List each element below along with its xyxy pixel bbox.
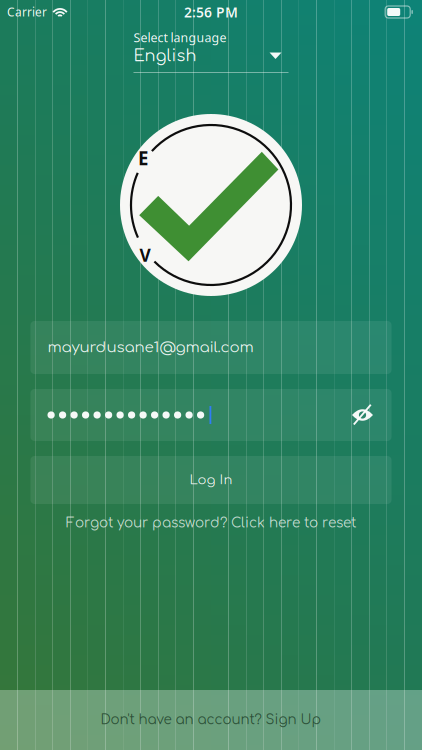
button[interactable]: Show password bbox=[341, 394, 383, 436]
button[interactable]: Don't have an account? Sign Up bbox=[0, 690, 422, 750]
staticText: 2:56 PM bbox=[184, 3, 238, 21]
staticText: E bbox=[138, 145, 148, 171]
staticText: Select language bbox=[133, 29, 226, 46]
staticText: Don't have an account? Sign Up bbox=[100, 712, 321, 727]
button[interactable]: Log In bbox=[30, 456, 391, 504]
button[interactable]: Select language bbox=[133, 30, 288, 73]
staticText: V bbox=[139, 243, 150, 267]
staticText: Log In bbox=[189, 473, 232, 487]
button[interactable]: Forgot your password? Click here to rese… bbox=[30, 507, 391, 539]
staticText: Carrier bbox=[7, 4, 47, 20]
staticText: English bbox=[133, 47, 196, 65]
staticText: Forgot your password? Click here to rese… bbox=[66, 515, 356, 531]
staticText: mayurdusane1@gmail.com bbox=[47, 339, 253, 356]
